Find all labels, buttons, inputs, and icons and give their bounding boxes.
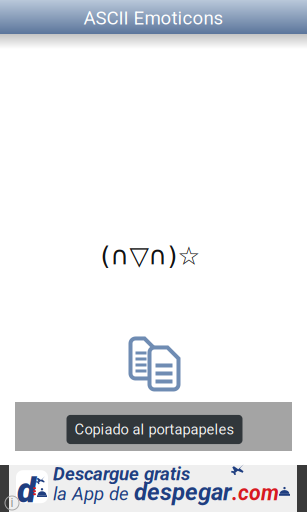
staticText: .com [232,480,279,505]
staticText: Descargue gratis [53,463,190,485]
staticText: ASCII Emoticons [83,7,223,29]
staticText: Copiado al portapapeles [74,421,234,438]
staticText: (∩▽∩)☆ [100,241,200,270]
staticText: la App de [53,483,134,505]
button[interactable]: ASCII Emoticons [0,0,307,34]
button[interactable]: Descargue gratis la App de despegar.com [0,465,307,512]
button[interactable]: Copy emoticon [130,338,180,390]
staticText: despegar [134,478,232,506]
staticText: d [17,470,36,511]
staticText: i [10,496,13,510]
